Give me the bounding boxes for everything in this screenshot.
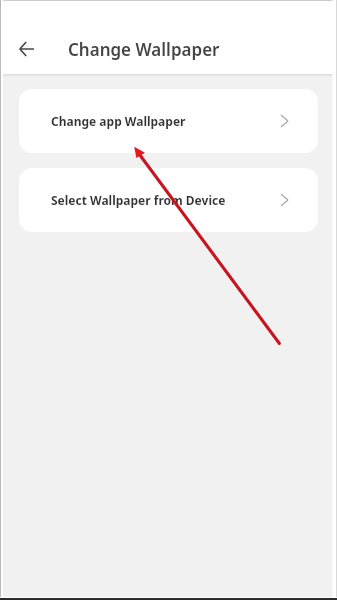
button[interactable]: Select Wallpaper from Device (19, 168, 318, 232)
button[interactable]: Back (7, 29, 46, 68)
button[interactable]: Change app Wallpaper (19, 89, 318, 153)
staticText: Change app Wallpaper (51, 113, 186, 129)
staticText: Change Wallpaper (68, 38, 220, 61)
staticText: Select Wallpaper from Device (51, 192, 226, 208)
